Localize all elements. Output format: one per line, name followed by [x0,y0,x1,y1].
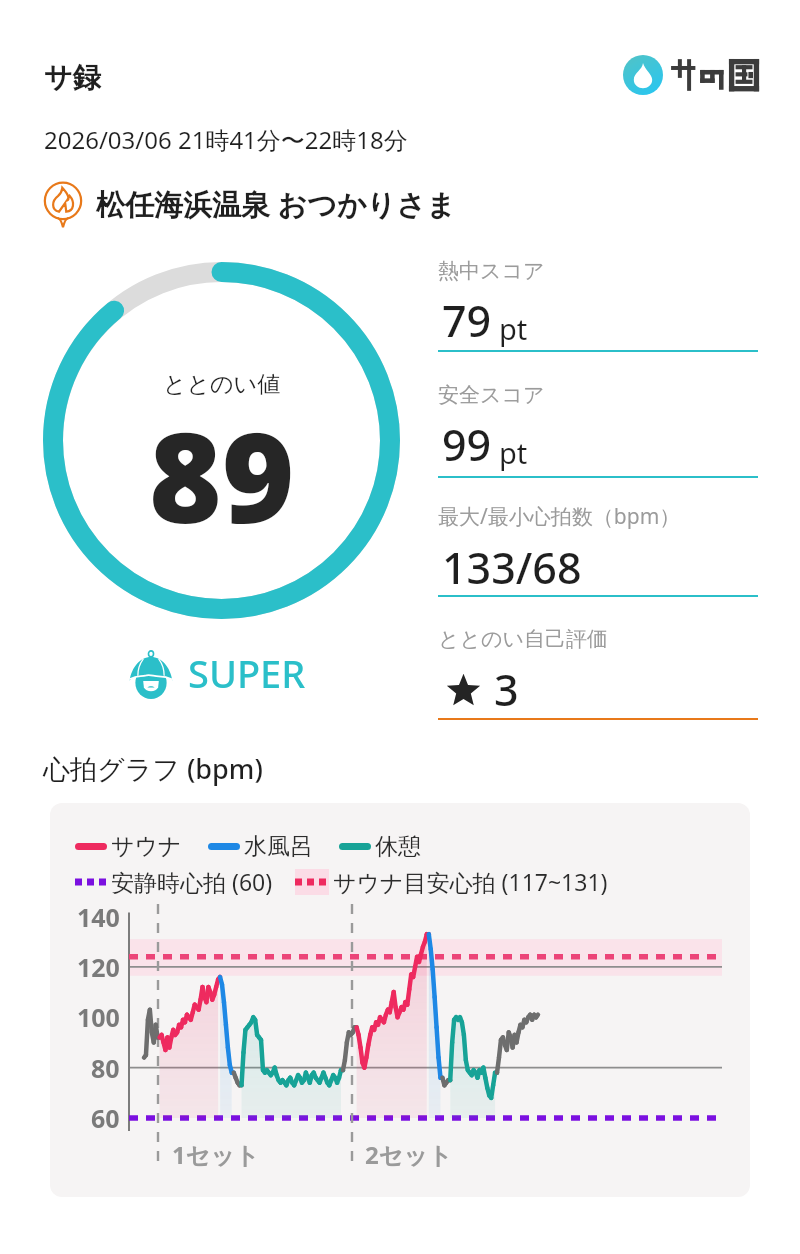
staticText: 140 [77,900,120,934]
staticText: 89 [149,390,295,559]
button[interactable]: 松任海浜温泉 おつかりさま [40,182,456,228]
staticText: 休憩 [375,832,421,861]
staticText: 120 [77,950,120,984]
button[interactable]: サの国 ロゴ [623,55,760,95]
staticText: SUPER [188,647,306,699]
staticText: 心拍グラフ (bpm) [43,750,263,787]
staticText: 80 [91,1051,120,1085]
staticText: 安静時心拍 (60) [111,866,273,897]
staticText: 99 [442,415,492,474]
staticText: 3 [494,660,519,719]
staticText: 2セット [365,1138,453,1171]
staticText: サウナ目安心拍 (117~131) [333,866,608,897]
staticText: 水風呂 [244,832,313,861]
staticText: 60 [91,1101,120,1135]
staticText: サウナ [111,832,182,861]
staticText: pt [499,309,528,348]
staticText: 最大/最小心拍数（bpm） [438,502,681,531]
button[interactable]: 安全スコア [438,382,545,474]
staticText: 1セット [172,1138,260,1171]
button[interactable]: ととのい自己評価 [438,626,608,720]
staticText: 2026/03/06 21時41分〜22時18分 [44,123,408,156]
button[interactable]: SUPER [128,648,306,700]
button[interactable]: 最大/最小心拍数（bpm） [438,502,681,597]
button[interactable]: 熱中スコア [438,258,545,350]
staticText: 100 [77,1000,120,1034]
staticText: 松任海浜温泉 おつかりさま [96,184,456,224]
staticText: 79 [442,291,492,350]
staticText: ととのい値 [163,370,281,399]
staticText: サ録 [44,60,101,95]
staticText: ととのい自己評価 [438,626,608,652]
staticText: 熱中スコア [438,258,545,284]
staticText: 安全スコア [438,382,545,408]
staticText: pt [499,433,528,472]
staticText: 133/68 [442,538,582,597]
